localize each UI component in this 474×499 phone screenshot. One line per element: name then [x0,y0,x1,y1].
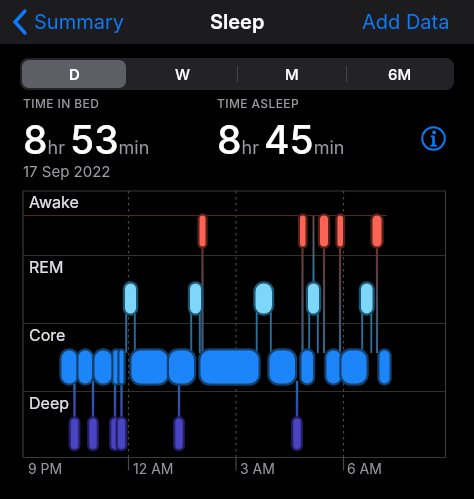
button[interactable]: D [22,60,126,88]
button[interactable]: Summary [0,0,125,44]
staticText: 17 Sep 2022 [23,162,111,180]
staticText: M [285,65,299,83]
staticText: TIME ASLEEP [217,96,300,111]
staticText: Add Data [362,10,450,34]
staticText: Sleep [210,10,265,34]
staticText: D [69,65,80,83]
staticText: Summary [34,10,125,34]
staticText: 8hr 53min [23,116,150,163]
staticText: 3 AM [240,460,275,477]
staticText: W [175,65,191,83]
staticText: 6 AM [347,460,382,477]
staticText: 9 PM [28,460,63,477]
button[interactable]: 6M [346,58,454,90]
staticText: REM [29,257,64,276]
button[interactable] [419,124,448,153]
staticText: Deep [29,393,69,412]
staticText: TIME IN BED [23,96,100,111]
staticText: Awake [29,192,79,211]
staticText: 6M [388,65,412,83]
button[interactable]: W [129,58,237,90]
button[interactable]: M [238,58,346,90]
staticText: Core [29,325,66,344]
button[interactable]: Add Data [386,10,474,34]
staticText: 12 AM [133,460,174,477]
staticText: 8hr 45min [217,116,345,163]
